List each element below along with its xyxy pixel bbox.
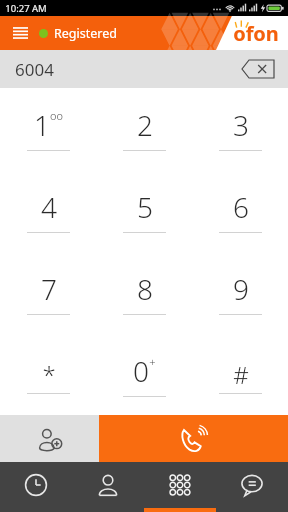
- button[interactable]: 6: [192, 169, 288, 251]
- button[interactable]: Recent: [0, 462, 72, 512]
- button[interactable]: Dialpad: [144, 462, 216, 512]
- button[interactable]: 8: [96, 251, 192, 333]
- button[interactable]: Add contact: [0, 415, 99, 462]
- button[interactable]: 9: [192, 251, 288, 333]
- button[interactable]: #: [192, 333, 288, 415]
- staticText: oo: [50, 108, 63, 123]
- staticText: 5: [137, 188, 153, 226]
- staticText: 7: [41, 270, 57, 308]
- staticText: 3: [233, 106, 249, 144]
- staticText: 0: [133, 352, 149, 390]
- staticText: +: [149, 354, 156, 369]
- button[interactable]: *: [0, 333, 96, 415]
- button[interactable]: 5: [96, 169, 192, 251]
- button[interactable]: Backspace: [238, 55, 278, 83]
- staticText: 8: [137, 270, 153, 308]
- button[interactable]: Menu: [9, 22, 31, 44]
- staticText: 9: [233, 270, 249, 308]
- staticText: 6004: [15, 58, 54, 81]
- button[interactable]: 1: [0, 88, 96, 169]
- button[interactable]: 0: [96, 333, 192, 415]
- button[interactable]: Call: [99, 415, 288, 462]
- staticText: *: [42, 358, 56, 391]
- staticText: 1: [34, 106, 50, 144]
- button[interactable]: 4: [0, 169, 96, 251]
- button[interactable]: 2: [96, 88, 192, 169]
- staticText: Registered: [54, 25, 117, 42]
- button[interactable]: Messages: [216, 462, 288, 512]
- staticText: 2: [137, 106, 153, 144]
- button[interactable]: 7: [0, 251, 96, 333]
- staticText: 10:27 AM: [5, 2, 47, 15]
- staticText: 6: [233, 188, 249, 226]
- button[interactable]: 3: [192, 88, 288, 169]
- staticText: ofon: [233, 20, 279, 47]
- staticText: #: [233, 358, 249, 391]
- staticText: 4: [41, 188, 57, 226]
- button[interactable]: Contacts: [72, 462, 144, 512]
